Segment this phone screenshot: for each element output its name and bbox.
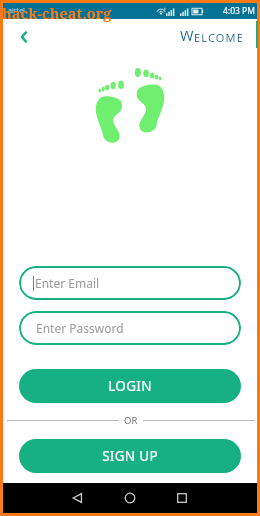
button[interactable]: Back bbox=[12, 25, 36, 49]
button[interactable]: Back bbox=[67, 487, 89, 509]
button[interactable]: Enter Email bbox=[19, 266, 241, 300]
staticText: OR bbox=[124, 414, 138, 427]
staticText: airtel bbox=[8, 6, 25, 16]
button[interactable]: LOGIN bbox=[19, 369, 241, 403]
button[interactable]: Recent apps bbox=[171, 487, 193, 509]
staticText: ELCOME bbox=[194, 30, 244, 45]
button[interactable]: Enter Password bbox=[19, 311, 241, 345]
staticText: Enter Email bbox=[35, 275, 100, 291]
staticText: SIGN UP bbox=[102, 447, 158, 465]
staticText: W bbox=[180, 25, 194, 45]
staticText: LOGIN bbox=[108, 377, 152, 395]
staticText: 4:03 PM bbox=[223, 5, 255, 17]
staticText: hack-cheat.org bbox=[2, 3, 112, 23]
staticText: Enter Password bbox=[36, 320, 124, 336]
button[interactable]: Home bbox=[119, 487, 141, 509]
button[interactable]: SIGN UP bbox=[19, 439, 241, 473]
